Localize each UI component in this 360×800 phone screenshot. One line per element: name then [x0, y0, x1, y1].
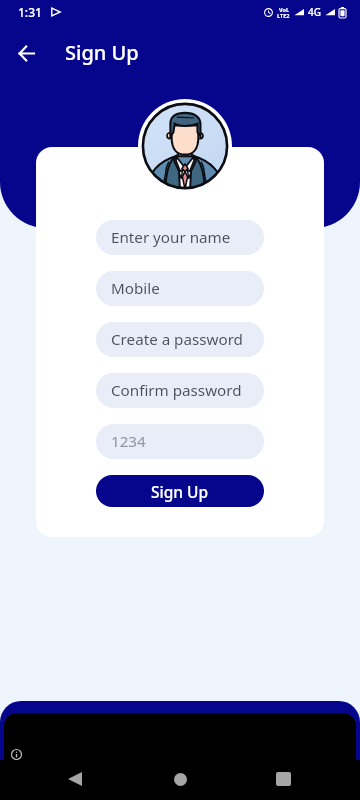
staticText: Create a password	[111, 329, 243, 350]
staticText: Sign Up	[65, 39, 139, 66]
button[interactable]: Sign Up	[96, 475, 264, 507]
staticText: LTE2	[277, 12, 290, 19]
staticText: Mobile	[111, 278, 160, 299]
staticText: Sign Up	[151, 481, 209, 502]
button[interactable]: Confirm password	[96, 373, 264, 408]
button[interactable]: Create a password	[96, 322, 264, 357]
button[interactable]: Recents	[265, 761, 301, 797]
button[interactable]: Back	[57, 761, 93, 797]
staticText: 4G	[308, 5, 321, 19]
button[interactable]: Home	[162, 761, 198, 797]
button[interactable]: Enter your name	[96, 220, 264, 255]
staticText: Enter your name	[111, 227, 231, 248]
staticText: 1:31	[18, 4, 42, 20]
button[interactable]: 1234	[96, 424, 264, 459]
button[interactable]: Mobile	[96, 271, 264, 306]
staticText: 1234	[111, 431, 146, 452]
button[interactable]: Back	[6, 32, 46, 72]
staticText: Confirm password	[111, 380, 242, 401]
staticText: VoL	[279, 6, 289, 13]
